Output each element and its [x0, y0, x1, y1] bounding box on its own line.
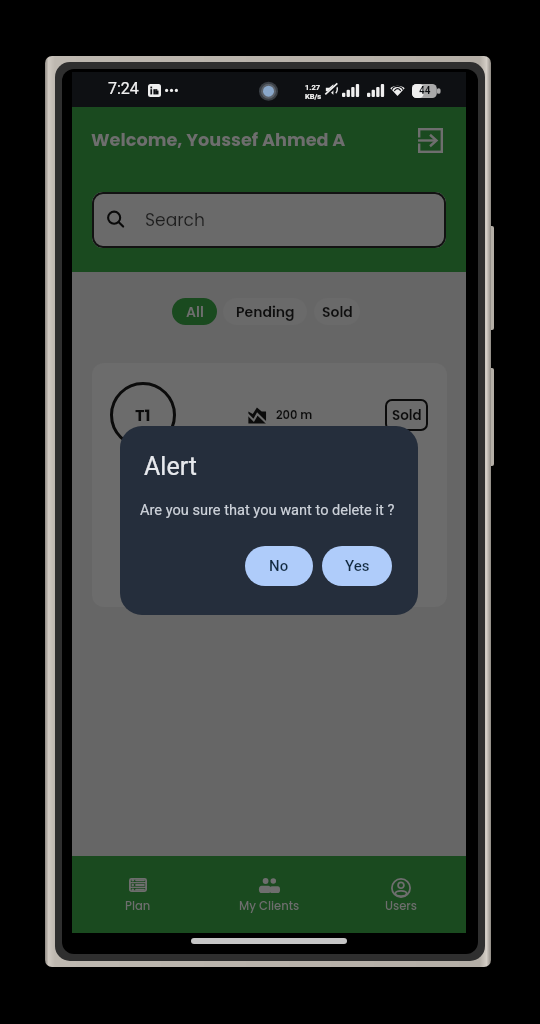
button[interactable]: My Clients [204, 856, 335, 933]
button[interactable]: Search [92, 192, 446, 248]
button[interactable]: T1 [92, 363, 447, 607]
staticText: 200 m [276, 407, 313, 423]
staticText: 7:24 [108, 79, 139, 98]
button[interactable]: Users [335, 856, 466, 933]
button[interactable]: Yes [322, 546, 392, 586]
staticText: Sold [322, 302, 353, 322]
staticText: 44 [419, 85, 431, 97]
button[interactable]: No [245, 546, 313, 586]
staticText: KB/s [305, 92, 322, 101]
staticText: Are you sure that you want to delete it … [140, 501, 395, 518]
button[interactable]: Pending [223, 298, 307, 325]
staticText: Pending [236, 302, 295, 322]
staticText: T1 [135, 404, 151, 426]
staticText: Users [385, 898, 417, 914]
button[interactable]: All [172, 298, 217, 325]
staticText: Yes [345, 557, 370, 575]
button[interactable]: Sold [314, 298, 360, 325]
staticText: My Clients [239, 898, 300, 914]
staticText: Sold [392, 406, 422, 425]
button[interactable]: Plan [72, 856, 204, 933]
staticText: Plan [125, 898, 151, 914]
button[interactable]: Log out [418, 128, 443, 153]
staticText: Search [145, 208, 205, 232]
staticText: Welcome, Youssef Ahmed A [91, 127, 346, 152]
staticText: All [186, 302, 204, 322]
staticText: 1.27 [305, 83, 321, 92]
staticText: Alert [144, 452, 197, 481]
staticText: No [269, 557, 289, 575]
